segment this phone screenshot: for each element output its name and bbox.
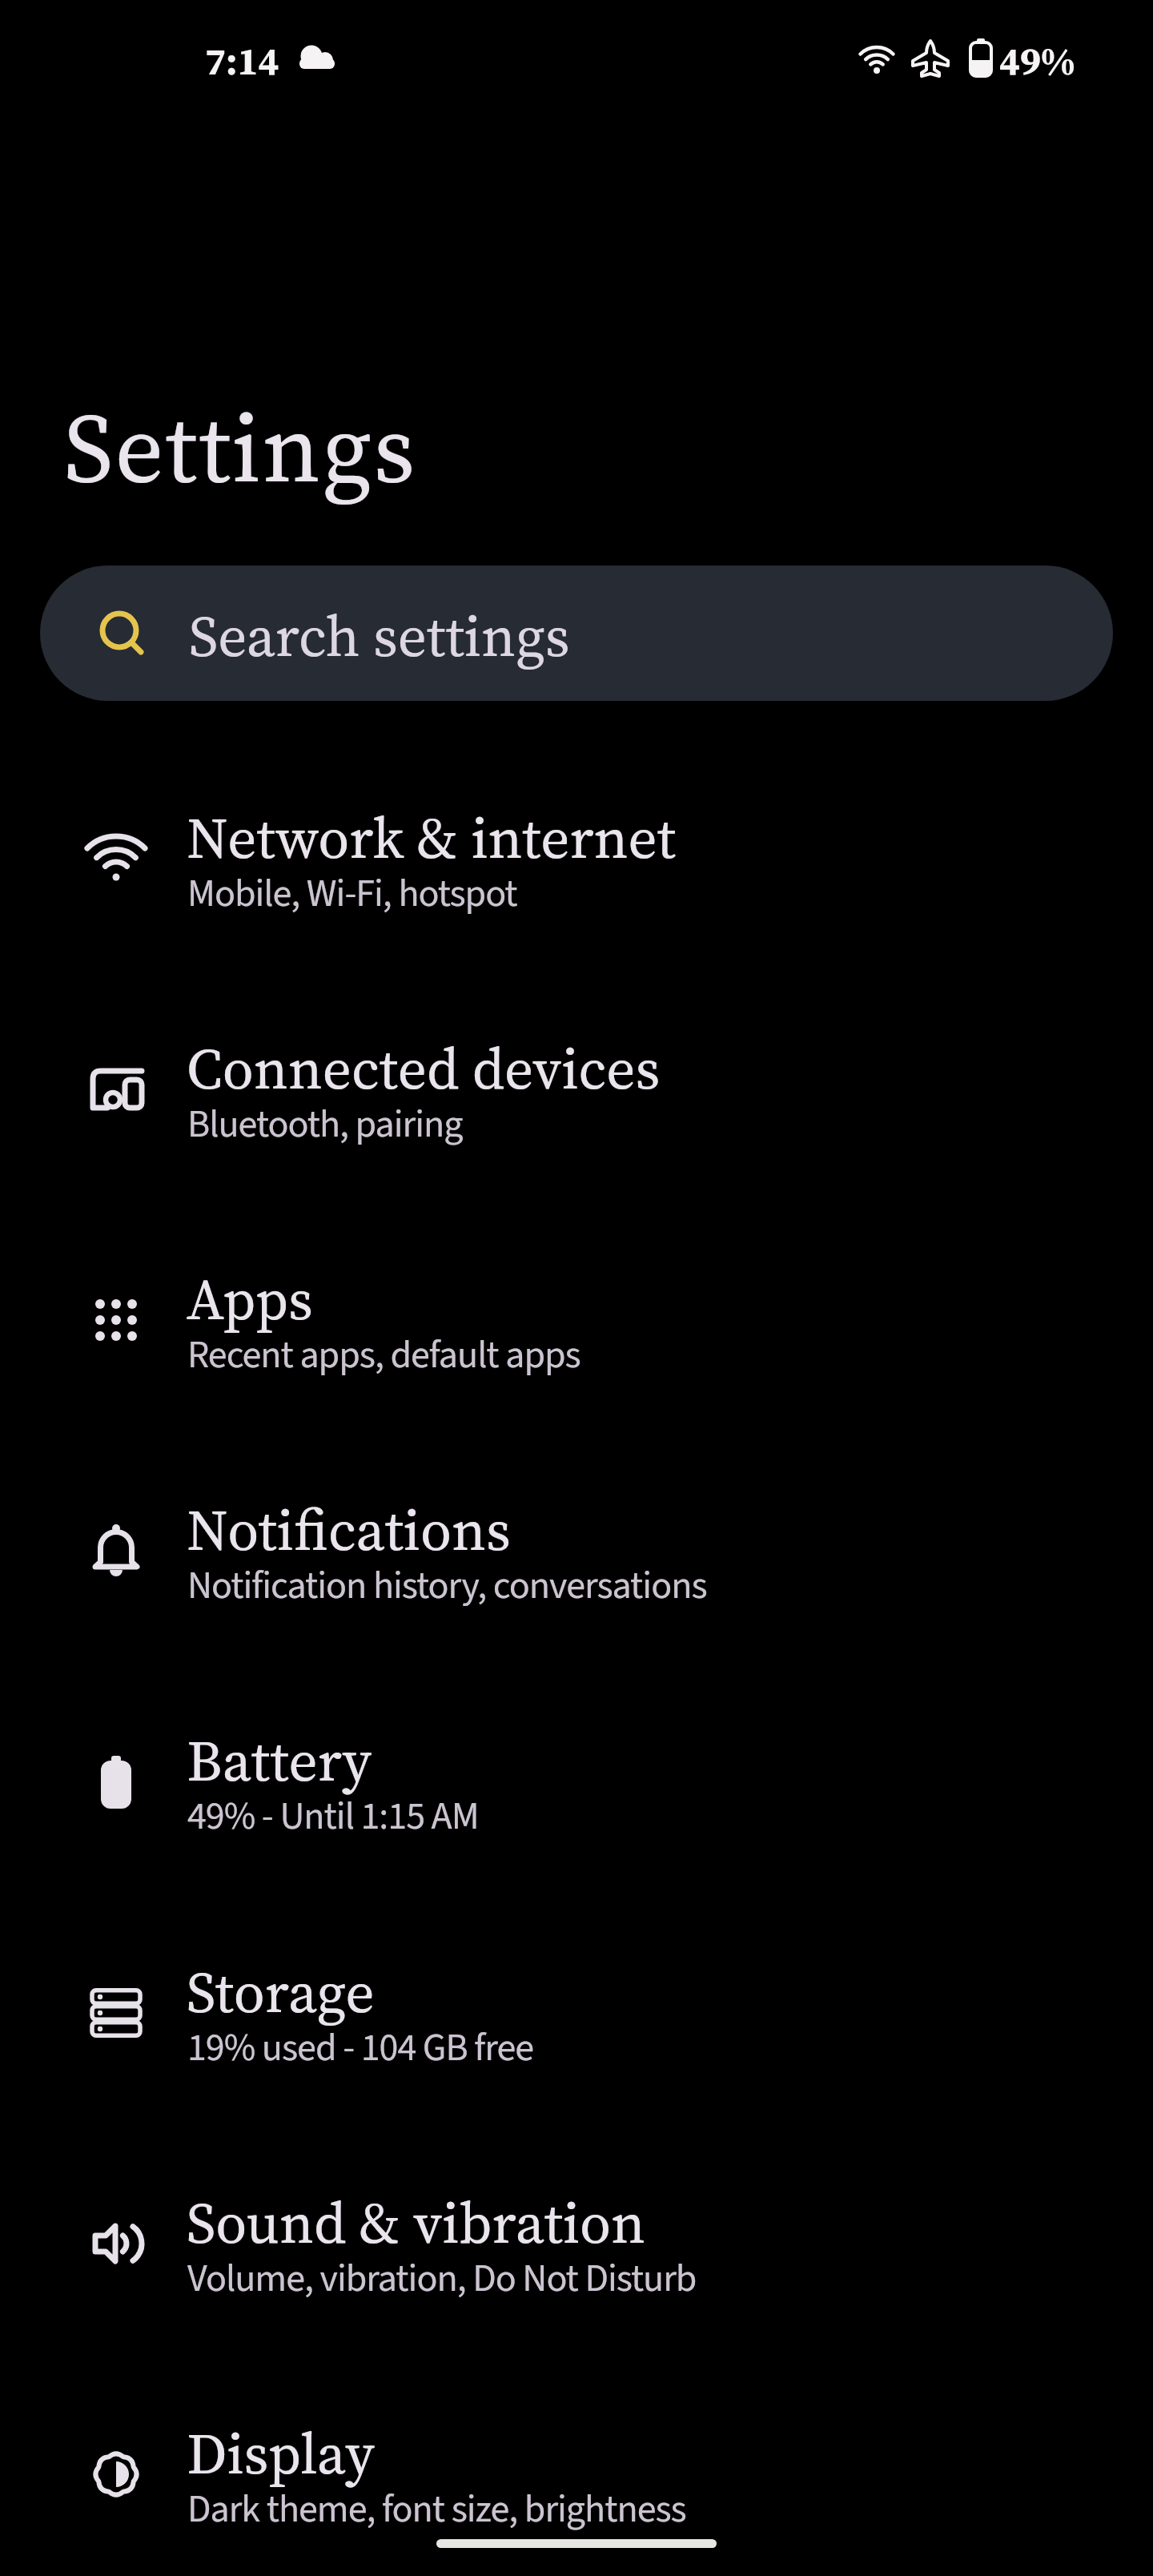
staticText: 19% used - 104 GB free xyxy=(187,2021,534,2075)
button[interactable]: Apps xyxy=(0,1219,1153,1450)
staticText: Display xyxy=(187,2414,375,2492)
button[interactable]: Storage xyxy=(0,1912,1153,2143)
staticText: Storage xyxy=(187,1953,375,2031)
button[interactable]: Notifications xyxy=(0,1450,1153,1680)
staticText: Connected devices xyxy=(187,1029,661,1107)
staticText: Battery xyxy=(187,1721,372,1799)
staticText: 7:14 xyxy=(205,34,279,87)
staticText: 49% xyxy=(999,34,1075,87)
staticText: 49% - Until 1:15 AM xyxy=(187,1789,479,1844)
button[interactable]: Battery xyxy=(0,1680,1153,1911)
button[interactable]: Search settings xyxy=(40,566,1113,701)
staticText: Recent apps, default apps xyxy=(187,1328,581,1383)
staticText: Notifications xyxy=(187,1491,511,1568)
button[interactable]: Connected devices xyxy=(0,988,1153,1219)
staticText: Mobile, Wi-Fi, hotspot xyxy=(187,867,517,921)
button[interactable]: Network & internet xyxy=(0,758,1153,988)
staticText: Search settings xyxy=(189,597,570,674)
staticText: Notification history, conversations xyxy=(187,1559,707,1613)
staticText: Network & internet xyxy=(187,799,676,876)
staticText: Volume, vibration, Do Not Disturb xyxy=(187,2252,697,2306)
button[interactable]: Sound & vibration xyxy=(0,2143,1153,2373)
staticText: Sound & vibration xyxy=(187,2184,646,2261)
staticText: Dark theme, font size, brightness xyxy=(187,2482,686,2537)
staticText: Apps xyxy=(187,1260,313,1338)
staticText: Bluetooth, pairing xyxy=(187,1097,463,1152)
button[interactable]: Display xyxy=(0,2373,1153,2576)
staticText: Settings xyxy=(64,382,417,514)
